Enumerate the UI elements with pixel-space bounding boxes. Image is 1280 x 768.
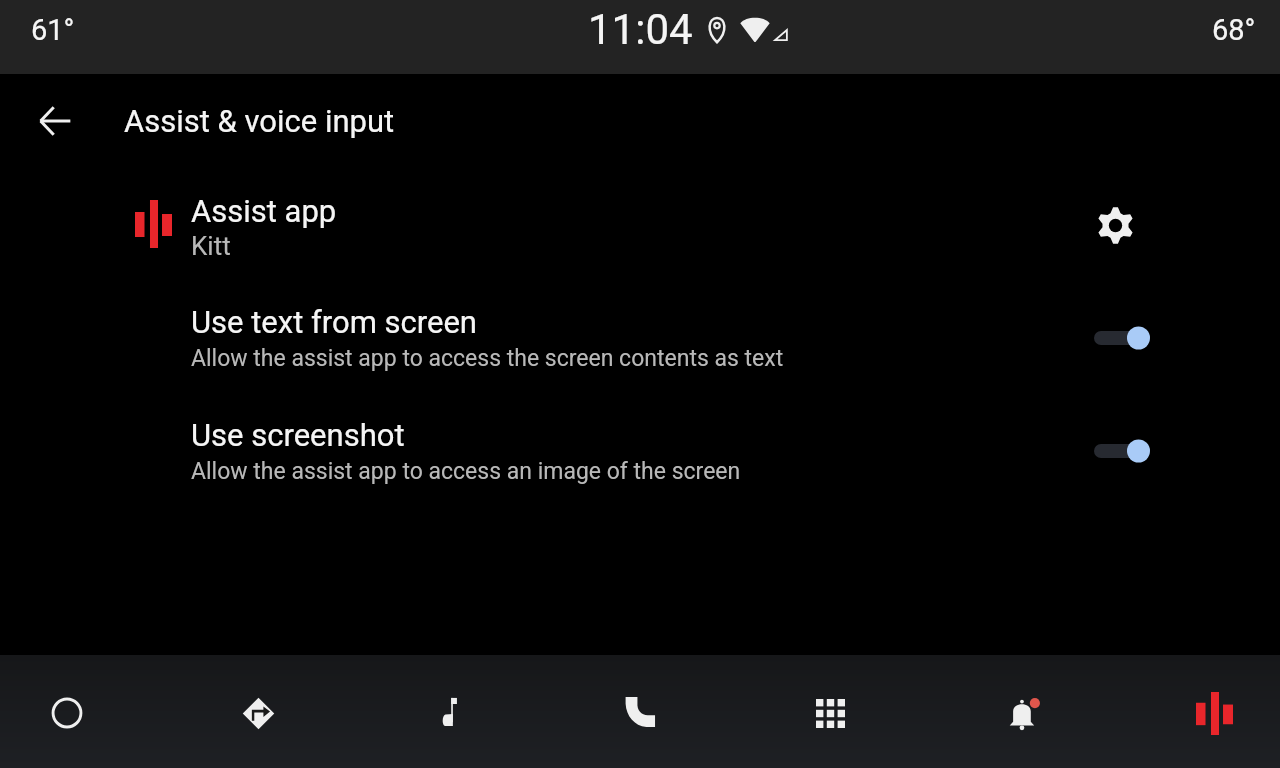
button[interactable]: Home xyxy=(22,655,112,768)
button[interactable]: Navigation xyxy=(213,655,303,768)
button[interactable]: Assist app xyxy=(0,180,1280,272)
button[interactable]: Phone xyxy=(595,655,685,768)
staticText: Assist app xyxy=(191,193,337,229)
staticText: Kitt xyxy=(191,231,231,261)
button[interactable]: Back xyxy=(28,94,82,148)
staticText: 61° xyxy=(31,13,75,47)
button[interactable]: Assist app settings xyxy=(1088,198,1142,252)
button[interactable]: Toggle Use screenshot xyxy=(1094,431,1150,471)
button[interactable]: Use text from screen xyxy=(0,294,1280,402)
button[interactable]: Assistant xyxy=(1169,655,1259,768)
staticText: 11:04 xyxy=(588,5,693,54)
staticText: Assist & voice input xyxy=(124,103,395,139)
staticText: 68° xyxy=(1212,13,1256,47)
button[interactable]: Media xyxy=(404,655,494,768)
button[interactable]: Use screenshot xyxy=(0,407,1280,515)
staticText: Allow the assist app to access an image … xyxy=(191,458,741,485)
staticText: Use screenshot xyxy=(191,417,405,453)
button[interactable]: Toggle Use text from screen xyxy=(1094,318,1150,358)
staticText: Allow the assist app to access the scree… xyxy=(191,345,784,372)
button[interactable]: Apps xyxy=(785,655,875,768)
staticText: Use text from screen xyxy=(191,304,477,340)
button[interactable]: Notifications xyxy=(979,655,1069,768)
